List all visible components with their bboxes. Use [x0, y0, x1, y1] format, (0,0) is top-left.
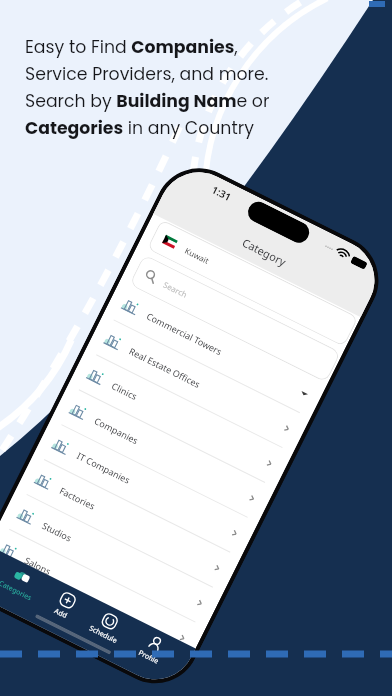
- staticText: Add: [52, 606, 69, 621]
- staticText: Studios: [40, 519, 74, 544]
- button[interactable]: Factories: [27, 460, 230, 587]
- button[interactable]: Real Estate Offices: [96, 320, 300, 447]
- staticText: Commercial Towers: [145, 310, 224, 357]
- button[interactable]: Clinics: [79, 355, 282, 482]
- staticText: Search: [162, 279, 190, 300]
- staticText: Clinics: [110, 379, 139, 402]
- button[interactable]: Categories: [0, 559, 45, 607]
- button[interactable]: IT Companies: [44, 425, 247, 552]
- staticText: Easy to Find Companies, Service Provider…: [25, 35, 270, 140]
- button[interactable]: Companies: [62, 390, 265, 517]
- button[interactable]: Add: [48, 586, 82, 625]
- staticText: 1:31: [209, 182, 234, 204]
- staticText: Schedule: [87, 624, 119, 646]
- button[interactable]: Salons: [0, 530, 195, 656]
- staticText: Salons: [23, 554, 53, 577]
- button[interactable]: Studios: [9, 495, 213, 622]
- staticText: ••••: [323, 242, 336, 254]
- button[interactable]: Kuwait: [147, 219, 358, 347]
- staticText: Factories: [58, 484, 98, 512]
- button[interactable]: Search: [129, 254, 341, 383]
- button[interactable]: Schedule: [84, 604, 130, 649]
- staticText: Category: [240, 235, 289, 269]
- staticText: Kuwait: [183, 245, 211, 266]
- staticText: IT Companies: [75, 449, 132, 486]
- button[interactable]: Profile: [133, 629, 172, 670]
- staticText: Real Estate Offices: [127, 344, 203, 390]
- button[interactable]: Commercial Towers: [114, 285, 317, 412]
- staticText: Companies: [92, 414, 141, 446]
- staticText: Profile: [137, 648, 161, 667]
- staticText: Categories: [0, 578, 34, 603]
